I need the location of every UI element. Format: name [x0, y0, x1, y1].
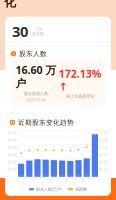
staticText: 2026-07-30: [66, 175, 82, 183]
staticText: 00.00: [99, 131, 108, 135]
staticText: 人: [11, 51, 15, 56]
staticText: 股东数: [32, 31, 44, 36]
staticText: 00.00: [99, 139, 108, 142]
staticText: 16.60 万户: [15, 63, 56, 90]
staticText: 00.00: [99, 161, 108, 164]
staticText: 涨跌幅: [75, 187, 87, 192]
staticText: 2026-07-30: [17, 175, 33, 183]
staticText: 最近披露人数: [24, 91, 48, 96]
staticText: 股东人数(万户): [36, 187, 62, 192]
staticText: 00.00: [8, 139, 17, 142]
staticText: 00.00: [8, 146, 17, 150]
staticText: 00.00: [99, 146, 108, 150]
staticText: 较上次披露变动: [66, 94, 94, 99]
staticText: 趋: [10, 120, 14, 125]
staticText: 2026-07-30: [50, 175, 66, 183]
staticText: 2026-07-30: [83, 175, 99, 183]
staticText: 00.00: [99, 153, 108, 157]
staticText: 00.00: [8, 131, 17, 135]
staticText: 30: [12, 22, 28, 41]
staticText: 00.00: [8, 168, 17, 172]
staticText: 一目: [34, 26, 42, 31]
staticText: 招金黄金最新股东变化: [4, 0, 112, 10]
staticText: 2026-07-30: [34, 175, 50, 183]
staticText: 近期股东变化趋势: [18, 118, 74, 126]
staticText: 00.00: [8, 153, 17, 157]
staticText: 172.13%↑: [59, 66, 102, 93]
staticText: 00.00: [8, 161, 17, 164]
staticText: (2026-07-30): [26, 97, 46, 102]
staticText: 股东人数: [19, 50, 47, 58]
staticText: 00.00: [99, 168, 108, 172]
